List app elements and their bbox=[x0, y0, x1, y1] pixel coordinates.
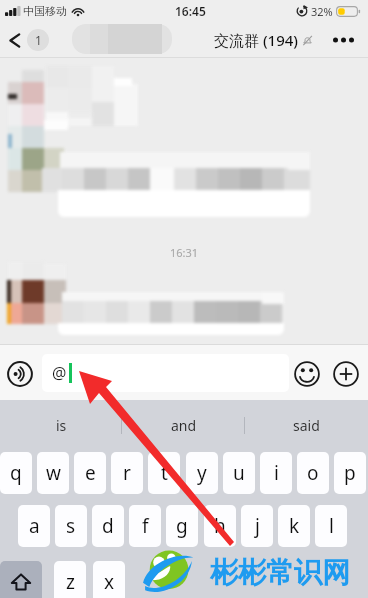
staticText: a bbox=[29, 513, 40, 539]
staticText: f bbox=[142, 513, 149, 539]
button[interactable]: d bbox=[92, 505, 124, 547]
button[interactable]: r bbox=[111, 452, 143, 494]
staticText: 交流群 (194) bbox=[214, 30, 299, 50]
button[interactable]: Emoji bbox=[290, 357, 323, 390]
staticText: o bbox=[307, 460, 319, 486]
staticText: x bbox=[104, 569, 115, 595]
staticText: 中国移动 bbox=[23, 4, 67, 18]
button[interactable]: e bbox=[74, 452, 106, 494]
button[interactable]: p bbox=[334, 452, 366, 494]
staticText: i bbox=[274, 460, 279, 486]
staticText: j bbox=[255, 513, 260, 539]
button[interactable]: j bbox=[241, 505, 273, 547]
button[interactable]: More bbox=[326, 22, 360, 58]
staticText: d bbox=[102, 513, 114, 539]
button[interactable]: z bbox=[54, 561, 86, 598]
button[interactable]: l bbox=[315, 505, 347, 547]
staticText: 32% bbox=[311, 4, 333, 19]
staticText: h bbox=[214, 513, 226, 539]
staticText: q bbox=[10, 460, 22, 486]
staticText: y bbox=[197, 460, 207, 486]
button[interactable]: k bbox=[278, 505, 310, 547]
button[interactable]: w bbox=[37, 452, 69, 494]
staticText: p bbox=[344, 460, 356, 486]
staticText: and bbox=[171, 416, 197, 435]
staticText: z bbox=[66, 569, 75, 595]
staticText: @ bbox=[52, 362, 67, 384]
button[interactable]: q bbox=[0, 452, 32, 494]
button[interactable]: g bbox=[166, 505, 198, 547]
staticText: 彬彬常识网 bbox=[210, 555, 350, 590]
button[interactable]: Back bbox=[9, 29, 53, 51]
staticText: is bbox=[56, 416, 67, 435]
button[interactable]: and bbox=[122, 400, 245, 450]
button[interactable]: h bbox=[204, 505, 236, 547]
staticText: u bbox=[233, 460, 245, 486]
button[interactable]: y bbox=[186, 452, 218, 494]
button[interactable]: o bbox=[297, 452, 329, 494]
staticText: 16:45 bbox=[175, 3, 206, 19]
button[interactable]: More options bbox=[329, 357, 362, 390]
button[interactable]: u bbox=[223, 452, 255, 494]
button[interactable]: @ bbox=[42, 354, 289, 392]
staticText: r bbox=[123, 460, 131, 486]
button[interactable]: s bbox=[55, 505, 87, 547]
button[interactable]: t bbox=[148, 452, 180, 494]
button[interactable]: is bbox=[0, 400, 122, 450]
button[interactable]: f bbox=[129, 505, 161, 547]
staticText: said bbox=[293, 416, 320, 435]
staticText: t bbox=[161, 460, 168, 486]
staticText: k bbox=[289, 513, 300, 539]
button[interactable]: a bbox=[18, 505, 50, 547]
button[interactable]: i bbox=[260, 452, 292, 494]
button[interactable]: x bbox=[93, 561, 125, 598]
staticText: w bbox=[46, 460, 61, 486]
staticText: s bbox=[66, 513, 76, 539]
staticText: 16:31 bbox=[170, 245, 199, 260]
button[interactable]: Voice input bbox=[3, 357, 36, 390]
staticText: g bbox=[176, 513, 188, 539]
button[interactable]: Shift bbox=[0, 561, 42, 598]
button[interactable]: said bbox=[245, 400, 368, 450]
staticText: 1 bbox=[35, 32, 42, 48]
staticText: e bbox=[85, 460, 96, 486]
staticText: l bbox=[329, 513, 334, 539]
